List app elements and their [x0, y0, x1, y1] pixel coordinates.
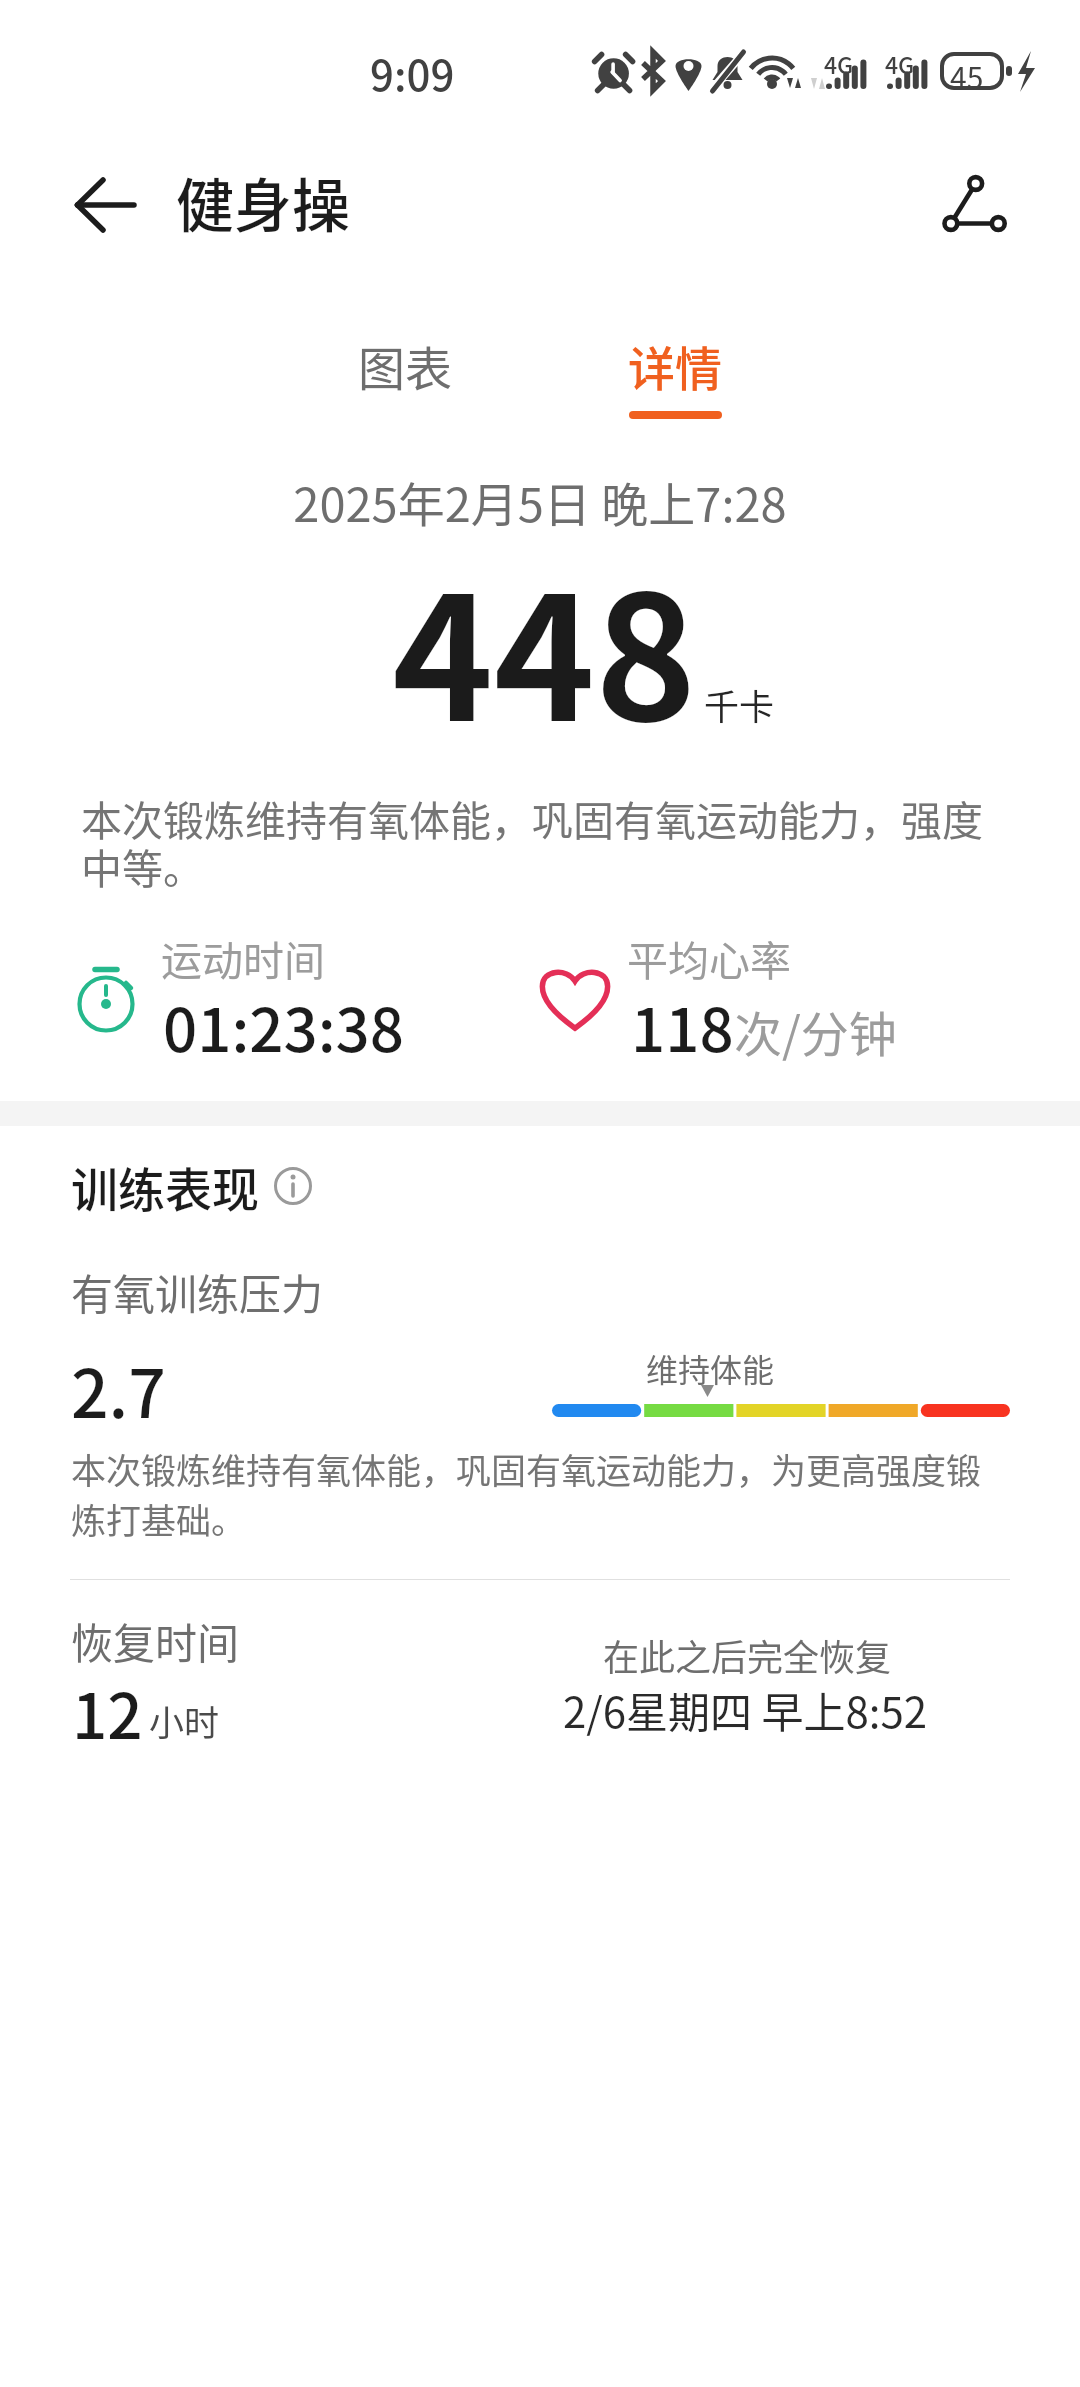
staticText: 训练表现: [71, 1152, 259, 1220]
staticText: 图表: [358, 331, 452, 399]
staticText: 12: [72, 1667, 143, 1757]
button[interactable]: 详情: [575, 331, 775, 441]
staticText: 详情: [628, 331, 722, 399]
staticText: 4G: [885, 47, 915, 80]
staticText: 448: [392, 521, 697, 770]
staticText: 平均心率: [627, 928, 791, 987]
staticText: 2/6星期四 早上8:52: [563, 1679, 928, 1740]
staticText: 恢复时间: [71, 1610, 240, 1671]
staticText: 本次锻炼维持有氧体能，巩固有氧运动能力，强度中等。: [81, 788, 1011, 896]
staticText: 9:09: [370, 42, 455, 103]
staticText: 运动时间: [161, 928, 325, 987]
staticText: 小时: [149, 1695, 220, 1746]
staticText: 维持体能: [646, 1345, 775, 1391]
staticText: 4G: [824, 47, 854, 80]
staticText: 次/分钟: [734, 996, 897, 1066]
staticText: 在此之后完全恢复: [603, 1629, 892, 1681]
staticText: 健身操: [176, 160, 351, 244]
staticText: 千卡: [704, 679, 775, 730]
staticText: 2025年2月5日 晚上7:28: [0, 467, 1080, 535]
button[interactable]: Info: [269, 1162, 317, 1210]
button[interactable]: Share: [925, 155, 1025, 255]
button[interactable]: Back: [54, 161, 142, 249]
staticText: 2.7: [71, 1341, 166, 1437]
staticText: 有氧训练压力: [71, 1261, 324, 1322]
staticText: 45: [950, 54, 984, 97]
button[interactable]: 图表: [305, 331, 505, 441]
staticText: 01:23:38: [163, 982, 404, 1069]
staticText: 本次锻炼维持有氧体能，巩固有氧运动能力，为更高强度锻炼打基础。: [71, 1443, 1006, 1544]
staticText: 118: [631, 982, 734, 1069]
